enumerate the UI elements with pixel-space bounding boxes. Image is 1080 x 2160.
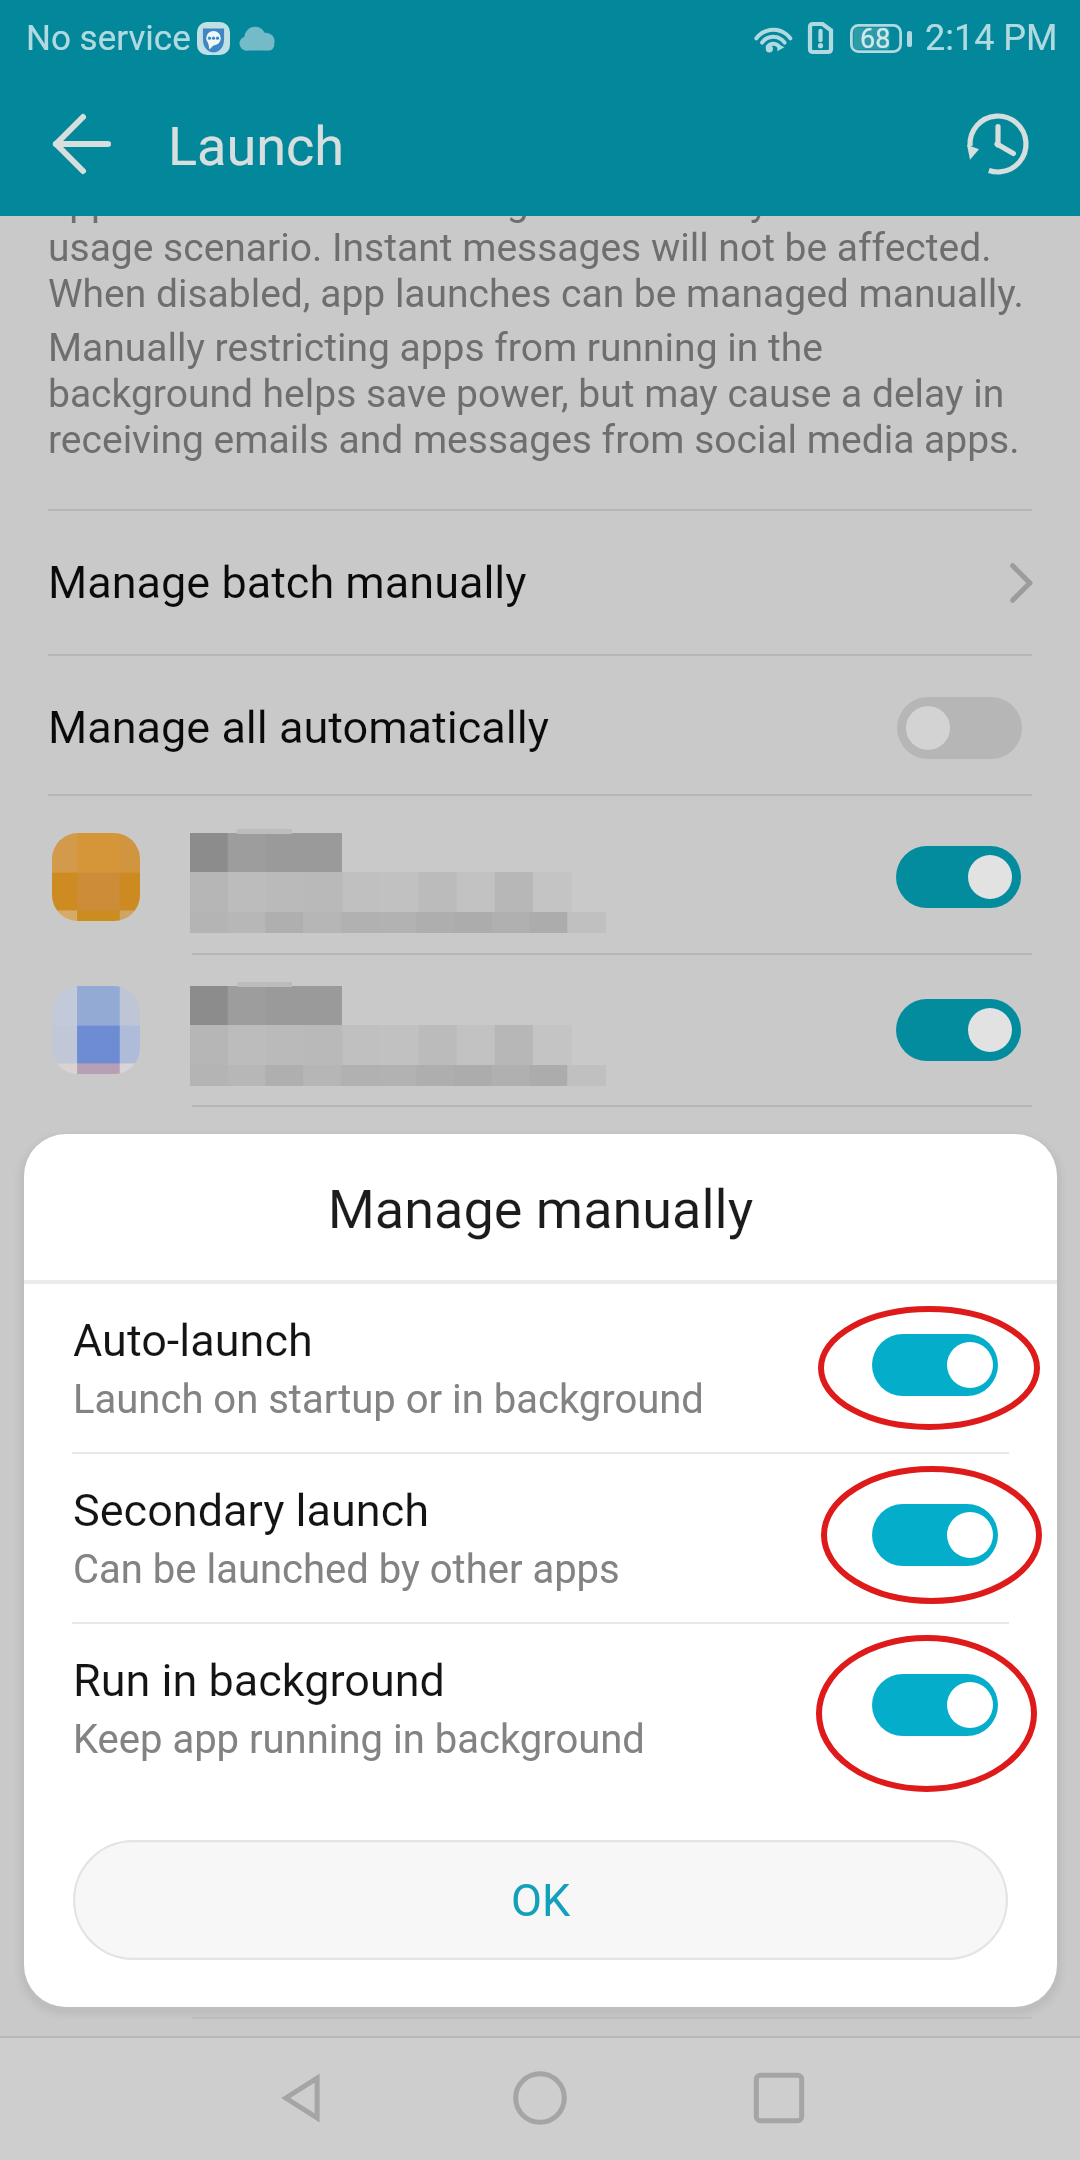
staticText: Secondary launch — [73, 1484, 430, 1537]
staticText: No service — [26, 18, 191, 59]
staticText: Manage batch manually — [48, 556, 527, 609]
button[interactable]: History — [956, 102, 1040, 186]
button[interactable]: Switch on — [0, 955, 1080, 1106]
staticText: background helps save power, but may cau… — [48, 371, 1005, 417]
staticText: Manually restricting apps from running i… — [48, 325, 823, 371]
button[interactable]: Toggle Secondary launch — [872, 1504, 998, 1566]
staticText: app launches will be managed based on yo… — [48, 179, 826, 225]
button[interactable]: Home — [485, 2043, 595, 2153]
button[interactable]: Manage all automatically — [0, 656, 1080, 799]
staticText: Launch on startup or in background — [73, 1376, 704, 1423]
button[interactable]: Secondary launch — [24, 1450, 1057, 1620]
staticText: Run in background — [73, 1654, 445, 1707]
staticText: Launch — [168, 115, 345, 178]
button[interactable]: Manage batch manually — [0, 511, 1080, 654]
button[interactable]: Toggle Run in background — [872, 1674, 998, 1736]
button[interactable]: Switch on — [0, 794, 1080, 954]
staticText: Auto-launch — [73, 1314, 313, 1367]
button[interactable]: Recents — [724, 2043, 834, 2153]
button[interactable]: Switch off — [897, 697, 1022, 759]
staticText: OK — [511, 1874, 571, 1927]
button[interactable]: Switch on — [896, 846, 1021, 908]
staticText: When disabled, app launches can be manag… — [48, 271, 1024, 317]
button[interactable]: Toggle Auto-launch — [872, 1334, 998, 1396]
staticText: 2:14 PM — [925, 17, 1058, 59]
button[interactable]: Auto-launch — [24, 1280, 1057, 1450]
staticText: Manage all automatically — [48, 701, 549, 754]
button[interactable]: OK — [73, 1840, 1008, 1960]
staticText: Can be launched by other apps — [73, 1546, 620, 1593]
staticText: Manage manually — [24, 1178, 1057, 1241]
staticText: Keep app running in background — [73, 1716, 645, 1763]
staticText: 68 — [860, 23, 891, 52]
button[interactable]: Back — [40, 102, 124, 186]
button[interactable]: Back — [247, 2043, 357, 2153]
button[interactable]: Run in background — [24, 1620, 1057, 1790]
staticText: usage scenario. Instant messages will no… — [48, 225, 992, 271]
button[interactable]: Switch on — [896, 999, 1021, 1061]
staticText: receiving emails and messages from socia… — [48, 417, 1020, 463]
